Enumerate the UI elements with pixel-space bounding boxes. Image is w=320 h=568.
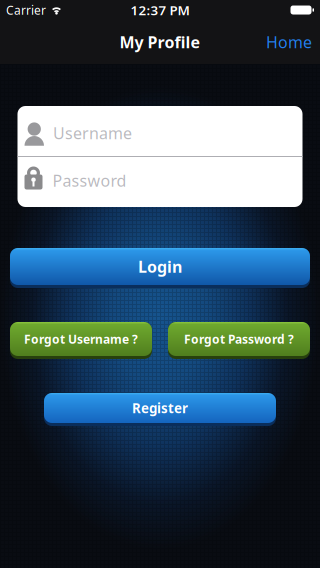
button[interactable]: Home — [266, 31, 320, 53]
staticText: Carrier — [6, 2, 46, 18]
button[interactable]: Forgot Password ? — [168, 322, 310, 359]
staticText: Password — [52, 170, 126, 191]
button[interactable]: Forgot Username ? — [10, 322, 152, 359]
staticText: Forgot Username ? — [24, 331, 138, 347]
staticText: My Profile — [119, 31, 200, 53]
button[interactable]: Login — [10, 248, 310, 288]
staticText: 12:37 PM — [130, 1, 189, 19]
staticText: Username — [53, 122, 132, 144]
button[interactable]: Username — [17, 106, 302, 156]
staticText: Login — [138, 256, 182, 277]
button[interactable]: Register — [44, 393, 276, 426]
staticText: Home — [266, 31, 312, 53]
staticText: Register — [132, 399, 188, 417]
staticText: Forgot Password ? — [184, 331, 294, 347]
button[interactable]: Password — [17, 157, 302, 207]
